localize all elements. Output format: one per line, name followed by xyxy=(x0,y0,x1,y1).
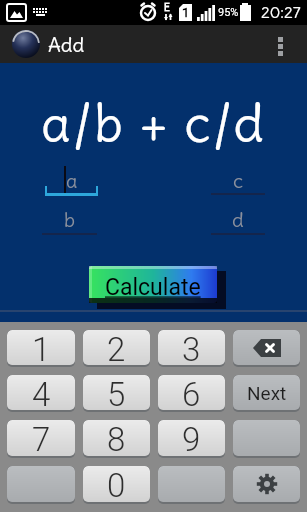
staticText: 1 xyxy=(182,5,190,20)
button[interactable] xyxy=(233,466,300,502)
button[interactable]: 8 xyxy=(83,420,150,456)
button[interactable] xyxy=(7,466,75,502)
button[interactable] xyxy=(233,420,300,456)
button[interactable]: 3 xyxy=(158,330,225,365)
staticText: 3 xyxy=(182,330,201,365)
button[interactable] xyxy=(158,466,225,502)
staticText: 7 xyxy=(32,420,51,456)
button[interactable]: d xyxy=(211,200,265,234)
staticText: 9 xyxy=(182,420,201,456)
button[interactable]: 4 xyxy=(7,375,75,410)
staticText: 0 xyxy=(107,466,126,502)
button[interactable] xyxy=(278,37,283,56)
button[interactable]: 5 xyxy=(83,375,150,410)
button[interactable]: c xyxy=(211,163,265,196)
staticText: Add xyxy=(48,32,85,57)
staticText: 4 xyxy=(32,375,51,410)
staticText: d xyxy=(232,207,244,232)
staticText: Calculate xyxy=(105,274,201,301)
staticText: 20:27 xyxy=(261,2,301,22)
staticText: a xyxy=(66,168,78,193)
button[interactable]: 6 xyxy=(158,375,225,410)
button[interactable]: Next xyxy=(233,375,300,410)
button[interactable]: a xyxy=(45,163,98,196)
staticText: a/b + c/d xyxy=(41,91,267,156)
button[interactable]: 7 xyxy=(7,420,75,456)
staticText: E xyxy=(164,2,170,14)
button[interactable]: Calculate xyxy=(89,266,226,309)
staticText: 8 xyxy=(107,420,126,456)
staticText: 5 xyxy=(107,375,126,410)
staticText: c xyxy=(233,168,244,193)
staticText: 6 xyxy=(182,375,201,410)
staticText: 1 xyxy=(32,330,51,365)
staticText: b xyxy=(64,207,76,232)
staticText: 95% xyxy=(218,6,239,19)
button[interactable]: 1 xyxy=(7,330,75,365)
button[interactable]: 2 xyxy=(83,330,150,365)
button[interactable] xyxy=(233,330,300,365)
staticText: 2 xyxy=(107,330,126,365)
button[interactable]: 0 xyxy=(83,466,150,502)
button[interactable]: 9 xyxy=(158,420,225,456)
staticText: Next xyxy=(247,382,287,404)
button[interactable]: b xyxy=(42,200,97,234)
